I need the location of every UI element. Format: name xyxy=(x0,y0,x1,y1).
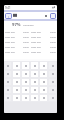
button[interactable] xyxy=(48,78,57,86)
button[interactable] xyxy=(4,61,12,70)
staticText: value xyxy=(50,31,56,34)
staticText: label text xyxy=(5,36,15,39)
staticText: ██ xyxy=(13,14,17,17)
button[interactable] xyxy=(39,94,48,102)
staticText: value xyxy=(23,51,29,54)
button[interactable] xyxy=(48,61,57,70)
staticText: label text xyxy=(5,41,15,44)
button[interactable] xyxy=(30,78,39,86)
staticText: value xyxy=(50,51,56,54)
staticText: value xyxy=(50,46,56,49)
staticText: label text xyxy=(5,51,15,54)
button[interactable] xyxy=(39,70,48,78)
staticText: value xyxy=(50,41,56,44)
button[interactable] xyxy=(4,94,12,102)
button[interactable] xyxy=(30,94,39,102)
button[interactable] xyxy=(39,78,48,86)
staticText: value xyxy=(23,36,29,39)
button[interactable] xyxy=(39,61,48,70)
button[interactable] xyxy=(30,70,39,78)
button[interactable] xyxy=(48,70,57,78)
button[interactable]: Menu xyxy=(50,13,56,19)
staticText: 97% xyxy=(12,22,21,27)
staticText: label text xyxy=(31,36,41,39)
button[interactable] xyxy=(21,86,30,94)
button[interactable]: Back xyxy=(5,13,12,19)
staticText: label text xyxy=(31,51,41,54)
staticText: label text xyxy=(5,46,15,49)
staticText: value xyxy=(50,36,56,39)
staticText: value xyxy=(23,41,29,44)
staticText: label text xyxy=(5,31,15,34)
button[interactable] xyxy=(30,86,39,94)
button[interactable] xyxy=(4,70,12,78)
button[interactable] xyxy=(12,78,21,86)
button[interactable] xyxy=(12,70,21,78)
staticText: value xyxy=(23,46,29,49)
button[interactable] xyxy=(21,70,30,78)
button[interactable] xyxy=(4,86,12,94)
button[interactable] xyxy=(39,86,48,94)
button[interactable] xyxy=(12,86,21,94)
button[interactable] xyxy=(30,61,39,70)
button[interactable] xyxy=(48,86,57,94)
staticText: 9:41 xyxy=(5,6,11,10)
staticText: ‹ xyxy=(8,14,10,19)
button[interactable] xyxy=(21,61,30,70)
button[interactable] xyxy=(21,78,30,86)
staticText: label text xyxy=(31,31,41,34)
staticText: label text xyxy=(31,46,41,49)
button[interactable] xyxy=(4,78,12,86)
button[interactable] xyxy=(12,61,21,70)
staticText: ▲▮ xyxy=(52,6,56,9)
staticText: value xyxy=(23,31,29,34)
button[interactable] xyxy=(12,94,21,102)
button[interactable] xyxy=(21,94,30,102)
button[interactable] xyxy=(48,94,57,102)
staticText: label text xyxy=(31,41,41,44)
staticText: complete xyxy=(23,23,34,26)
